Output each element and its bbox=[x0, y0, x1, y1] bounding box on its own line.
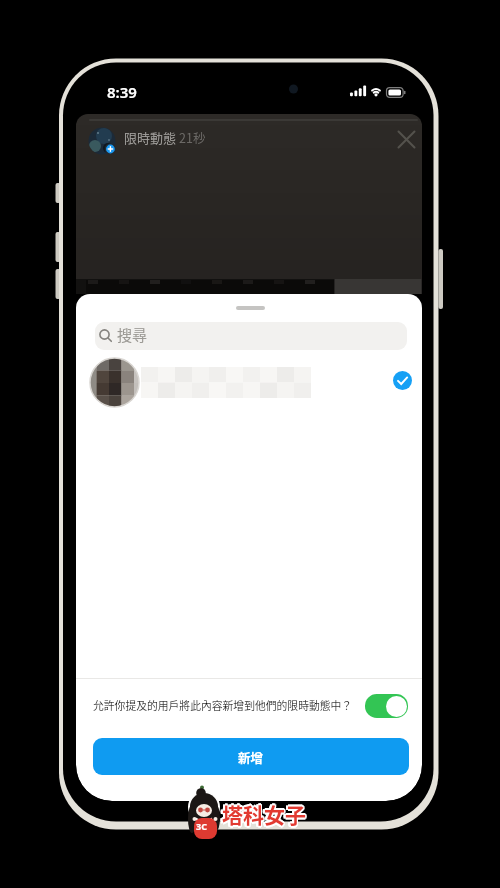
staticText: 塔科女子 bbox=[220, 798, 304, 828]
staticText: 塔科女子 bbox=[222, 799, 306, 829]
button[interactable]: 搜尋 bbox=[95, 322, 407, 350]
staticText: 3C bbox=[196, 820, 207, 832]
staticText: 搜尋 bbox=[117, 324, 148, 346]
button[interactable] bbox=[76, 354, 422, 410]
staticText: 塔科女子 bbox=[222, 801, 306, 831]
button[interactable]: 新增 bbox=[93, 738, 409, 775]
staticText: 塔科女子 bbox=[220, 799, 304, 829]
staticText: 8:39 bbox=[107, 82, 137, 102]
staticText: 塔科女子 bbox=[223, 798, 307, 828]
staticText: 允許你提及的用戶將此內容新增到他們的限時動態中？ bbox=[93, 697, 353, 713]
staticText: 21秒 bbox=[179, 128, 206, 146]
button[interactable] bbox=[397, 130, 416, 149]
staticText: 塔科女子 bbox=[223, 799, 307, 829]
button[interactable] bbox=[365, 694, 408, 718]
staticText: 新增 bbox=[238, 748, 264, 766]
staticText: 塔科女子 bbox=[220, 800, 304, 830]
staticText: 塔科女子 bbox=[223, 800, 307, 830]
staticText: 限時動態 bbox=[124, 128, 177, 147]
staticText: 塔科女子 bbox=[222, 797, 306, 827]
button[interactable]: 允許你提及的用戶將此內容新增到他們的限時動態中？ bbox=[76, 679, 422, 723]
